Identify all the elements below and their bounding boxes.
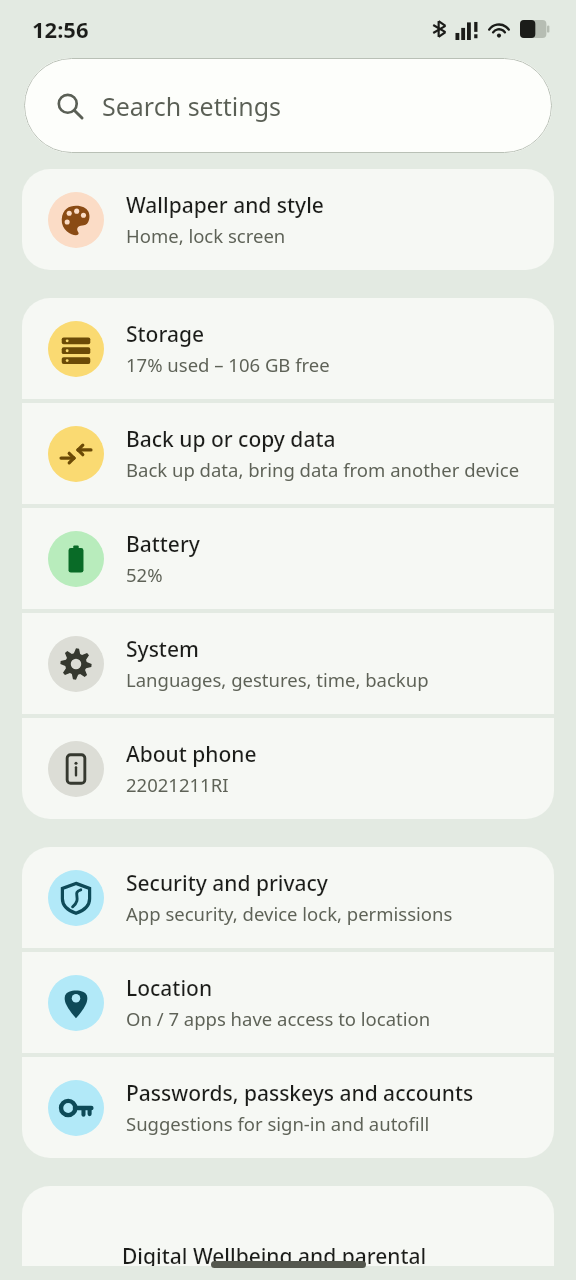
staticText: Location xyxy=(126,974,213,1003)
staticText: 17% used – 106 GB free xyxy=(126,352,330,377)
button[interactable]: Digital Wellbeing and parental xyxy=(22,1186,554,1266)
staticText: 52% xyxy=(126,562,163,587)
staticText: Passwords, passkeys and accounts xyxy=(126,1079,474,1108)
staticText: Languages, gestures, time, backup xyxy=(126,667,429,692)
button[interactable]: Security and privacy xyxy=(22,847,554,948)
staticText: Digital Wellbeing and parental xyxy=(122,1242,427,1266)
staticText: Search settings xyxy=(102,89,282,123)
button[interactable]: About phone xyxy=(22,718,554,819)
button[interactable]: Storage xyxy=(22,298,554,399)
staticText: On / 7 apps have access to location xyxy=(126,1006,431,1031)
staticText: Wallpaper and style xyxy=(126,191,324,220)
button[interactable]: System xyxy=(22,613,554,714)
staticText: Back up data, bring data from another de… xyxy=(126,457,520,482)
staticText: 12:56 xyxy=(32,14,89,44)
staticText: App security, device lock, permissions xyxy=(126,901,453,926)
staticText: About phone xyxy=(126,740,257,769)
button[interactable]: Passwords, passkeys and accounts xyxy=(22,1057,554,1158)
staticText: Suggestions for sign-in and autofill xyxy=(126,1111,430,1136)
staticText: Back up or copy data xyxy=(126,425,336,454)
button[interactable]: Back up or copy data xyxy=(22,403,554,504)
staticText: Battery xyxy=(126,530,200,559)
button[interactable]: Location xyxy=(22,952,554,1053)
staticText: Storage xyxy=(126,320,204,349)
button[interactable]: Search settings xyxy=(24,58,552,153)
button[interactable]: Battery xyxy=(22,508,554,609)
staticText: Home, lock screen xyxy=(126,223,286,248)
staticText: System xyxy=(126,635,199,664)
staticText: 22021211RI xyxy=(126,772,229,797)
button[interactable]: Wallpaper and style xyxy=(22,169,554,270)
staticText: Security and privacy xyxy=(126,869,328,898)
